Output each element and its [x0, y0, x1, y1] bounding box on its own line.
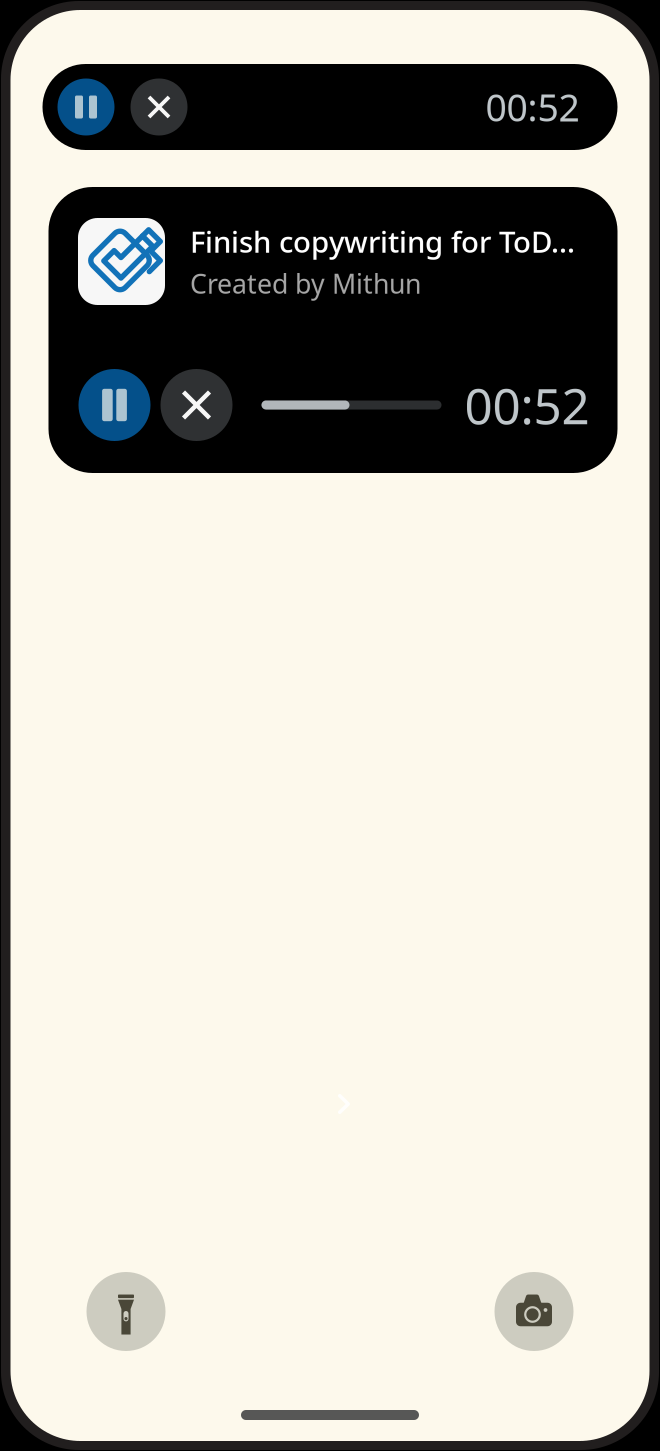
staticText: Created by Mithun — [190, 266, 421, 301]
button[interactable]: Flashlight — [86, 1272, 165, 1351]
staticText: Finish copywriting for ToD... — [190, 222, 575, 261]
staticText: 00:52 — [464, 372, 589, 438]
button[interactable]: Stop — [160, 369, 232, 441]
button[interactable]: Camera — [494, 1272, 573, 1351]
staticText: 00:52 — [485, 82, 579, 132]
button[interactable]: Pause — [78, 369, 150, 441]
button[interactable]: Pause — [57, 78, 114, 135]
button[interactable]: Stop — [130, 78, 187, 135]
